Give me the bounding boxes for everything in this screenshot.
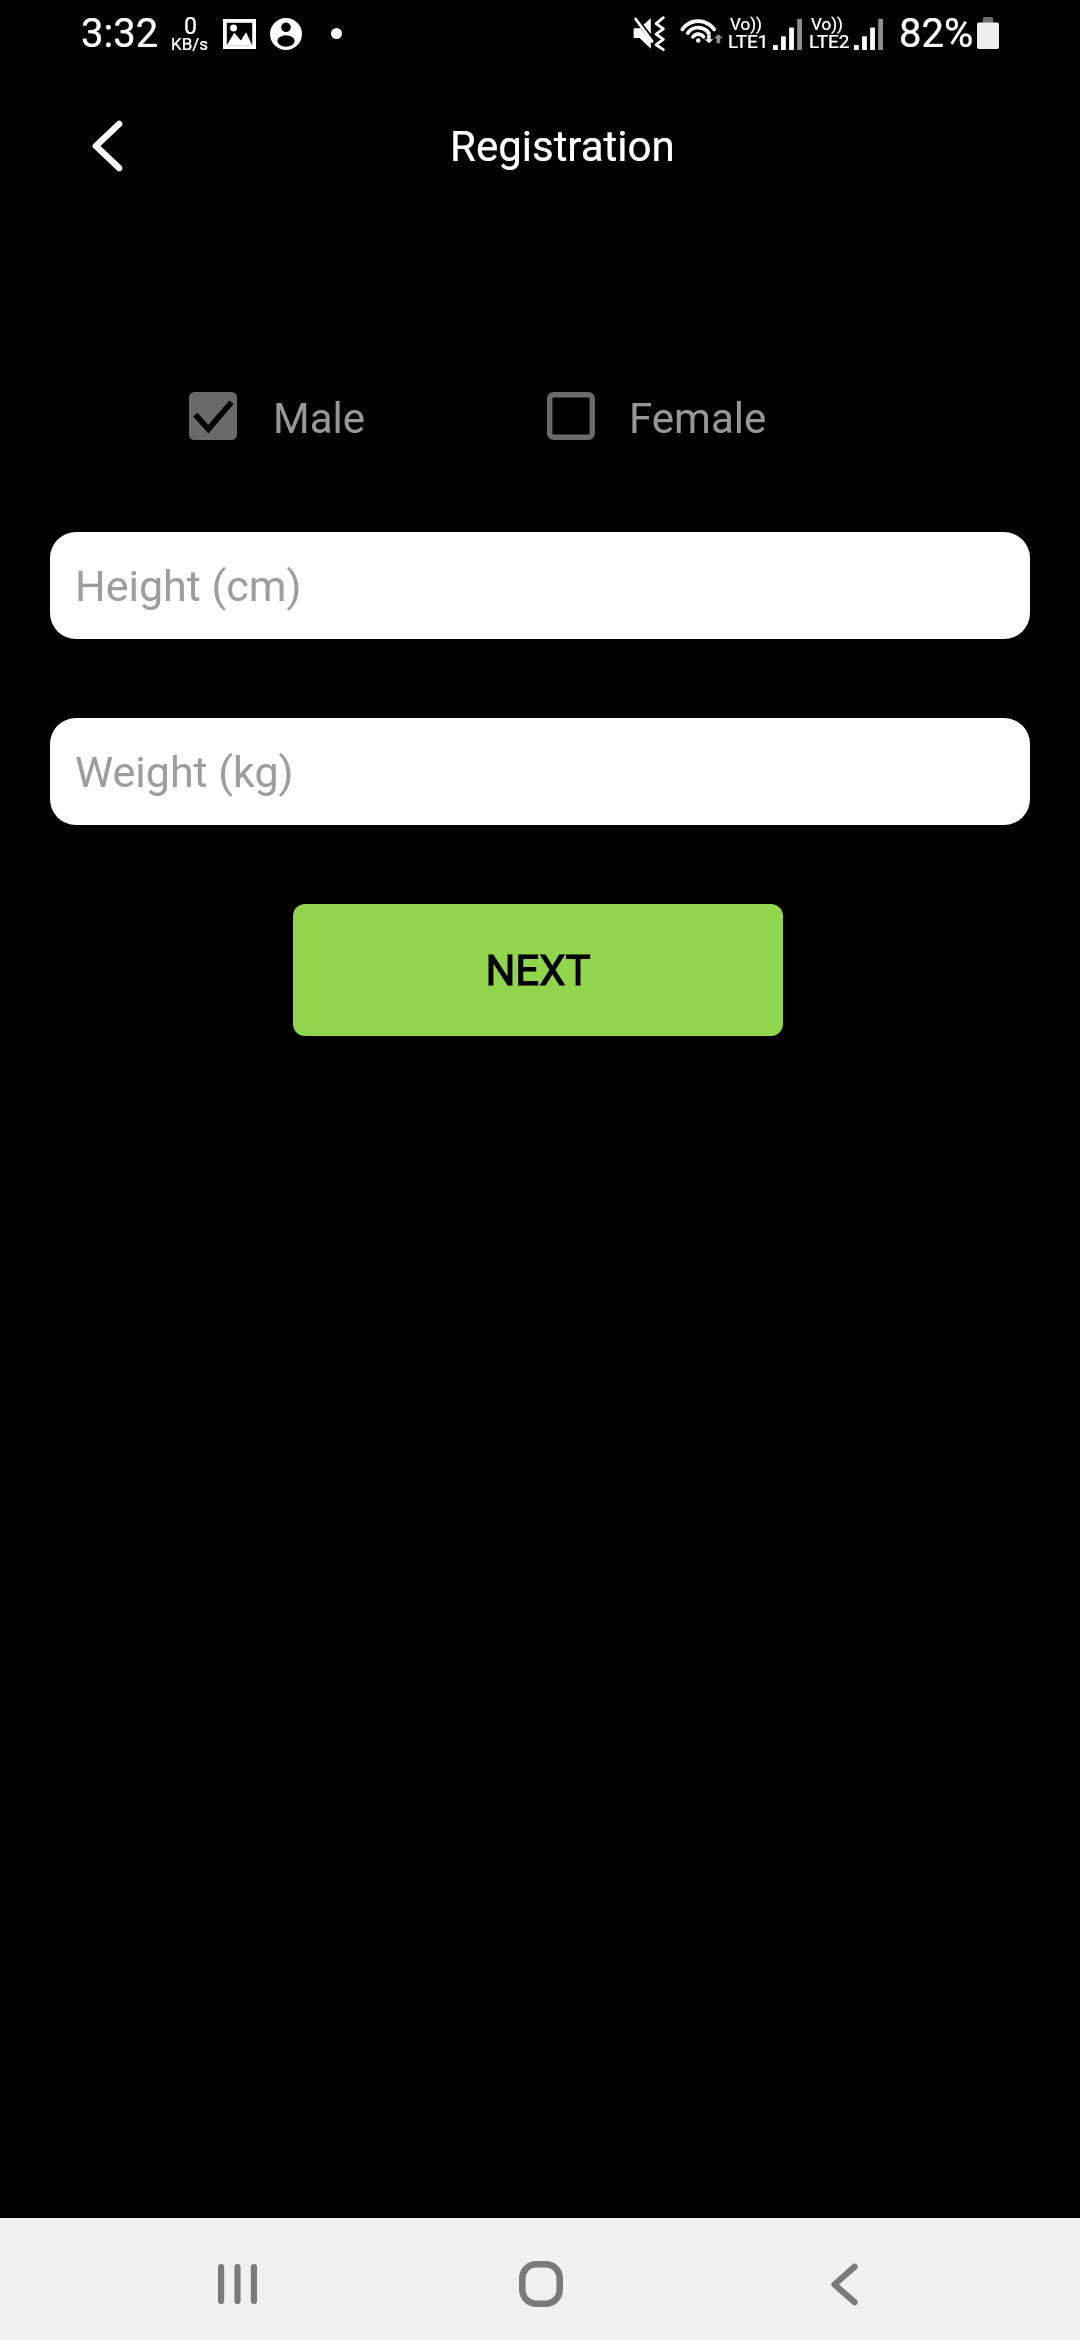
staticText: Female <box>629 394 767 442</box>
staticText: 0 <box>184 13 197 40</box>
staticText: LTE1 <box>728 30 769 52</box>
button[interactable]: Male <box>189 392 365 440</box>
staticText: Vo)) <box>730 14 762 34</box>
button[interactable]: Female <box>547 392 767 440</box>
button[interactable]: Recents <box>191 2238 283 2330</box>
staticText: 3:32 <box>81 10 159 57</box>
staticText: Male <box>273 394 365 442</box>
staticText: Vo)) <box>811 14 843 34</box>
button[interactable]: Back <box>798 2238 890 2330</box>
button[interactable]: Back <box>63 102 151 190</box>
staticText: KB/s <box>171 34 209 54</box>
button[interactable]: Height (cm) <box>50 532 1030 639</box>
staticText: Registration <box>450 122 675 171</box>
button[interactable]: Home <box>495 2238 587 2330</box>
button[interactable]: NEXT <box>293 904 783 1036</box>
staticText: Weight (kg) <box>75 747 294 797</box>
staticText: 82% <box>899 10 974 57</box>
button[interactable]: Weight (kg) <box>50 718 1030 825</box>
staticText: LTE2 <box>809 30 850 52</box>
staticText: NEXT <box>485 946 591 995</box>
staticText: Height (cm) <box>75 561 302 611</box>
